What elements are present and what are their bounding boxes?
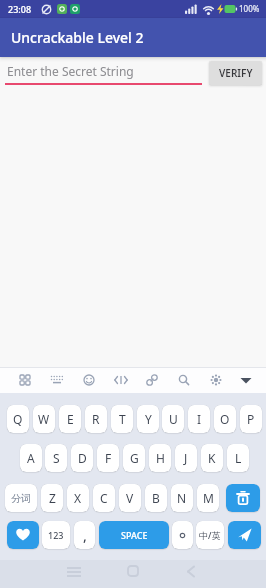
staticText: Enter the Secret String xyxy=(7,63,134,79)
staticText: M xyxy=(203,490,214,506)
button[interactable]: T xyxy=(111,405,133,433)
staticText: V xyxy=(126,490,134,506)
staticText: I xyxy=(197,411,202,427)
staticText: S xyxy=(53,450,60,466)
button[interactable]: X xyxy=(67,484,89,512)
staticText: F xyxy=(105,450,112,466)
button[interactable]: D xyxy=(71,444,93,472)
button[interactable]: E xyxy=(59,405,81,433)
button[interactable]: G xyxy=(123,444,145,472)
staticText: H xyxy=(156,450,165,466)
staticText: VERIFY xyxy=(219,66,253,80)
button[interactable]: VERIFY xyxy=(209,61,262,85)
staticText: Uncrackable Level 2 xyxy=(11,28,144,47)
staticText: 中/英 xyxy=(199,529,221,541)
staticText: W xyxy=(38,411,50,427)
button[interactable] xyxy=(7,521,39,549)
staticText: 分词 xyxy=(11,492,31,505)
staticText: Z xyxy=(49,490,56,506)
staticText: SPACE xyxy=(121,529,148,541)
staticText: K xyxy=(208,450,216,466)
button[interactable]: R xyxy=(85,405,107,433)
staticText: E xyxy=(67,411,74,427)
staticText: L xyxy=(235,450,242,466)
staticText: N xyxy=(177,490,187,506)
button[interactable]: H xyxy=(149,444,171,472)
button[interactable] xyxy=(228,521,261,549)
staticText: G xyxy=(130,450,139,466)
staticText: Q xyxy=(13,411,23,427)
button[interactable]: U xyxy=(162,405,184,433)
staticText: 23:08 xyxy=(8,3,32,15)
staticText: C xyxy=(100,490,108,506)
button[interactable]: A xyxy=(20,444,42,472)
button[interactable]: J xyxy=(175,444,197,472)
button[interactable]: 分词 xyxy=(5,484,37,512)
button[interactable]: S xyxy=(45,444,67,472)
staticText: , xyxy=(83,526,87,545)
button[interactable]: B xyxy=(145,484,167,512)
button[interactable]: SPACE xyxy=(99,521,169,549)
button[interactable]: Z xyxy=(41,484,63,512)
staticText: P xyxy=(247,411,255,427)
staticText: X xyxy=(74,490,82,506)
staticText: T xyxy=(119,411,126,427)
staticText: 123 xyxy=(48,529,64,541)
button[interactable]: Q xyxy=(7,405,29,433)
button[interactable]: 中/英 xyxy=(196,521,224,549)
button[interactable]: F xyxy=(97,444,119,472)
staticText: J xyxy=(184,450,188,466)
button[interactable]: W xyxy=(33,405,55,433)
staticText: A xyxy=(27,450,35,466)
button[interactable]: Y xyxy=(137,405,159,433)
button[interactable]: P xyxy=(240,405,262,433)
button[interactable]: M xyxy=(197,484,219,512)
button[interactable]: N xyxy=(171,484,193,512)
staticText: R xyxy=(92,411,100,427)
button[interactable]: 123 xyxy=(42,521,70,549)
staticText: O xyxy=(220,411,230,427)
button[interactable] xyxy=(172,521,193,549)
staticText: B xyxy=(152,490,160,506)
staticText: U xyxy=(169,411,178,427)
button[interactable]: K xyxy=(201,444,223,472)
button[interactable]: L xyxy=(227,444,249,472)
button[interactable]: , xyxy=(74,521,95,549)
staticText: Y xyxy=(145,411,152,427)
staticText: D xyxy=(78,450,87,466)
button[interactable]: I xyxy=(188,405,210,433)
button[interactable]: C xyxy=(93,484,115,512)
button[interactable] xyxy=(226,484,260,512)
staticText: 100% xyxy=(239,3,260,14)
button[interactable]: V xyxy=(119,484,141,512)
button[interactable]: O xyxy=(214,405,236,433)
